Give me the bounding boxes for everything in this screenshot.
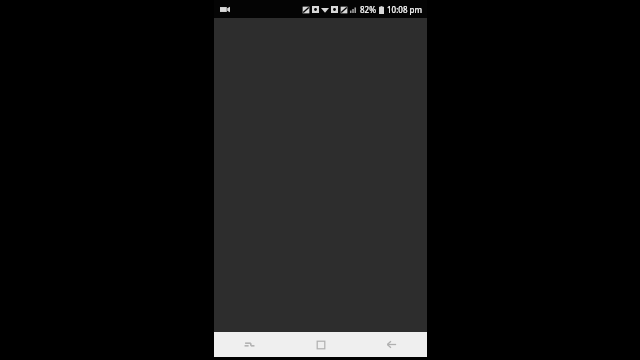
staticText: 82%: [360, 4, 376, 15]
button[interactable]: Back: [356, 332, 427, 357]
staticText: 10:08 pm: [387, 4, 423, 15]
button[interactable]: Home: [285, 332, 356, 357]
button[interactable]: Recent apps: [214, 332, 285, 357]
